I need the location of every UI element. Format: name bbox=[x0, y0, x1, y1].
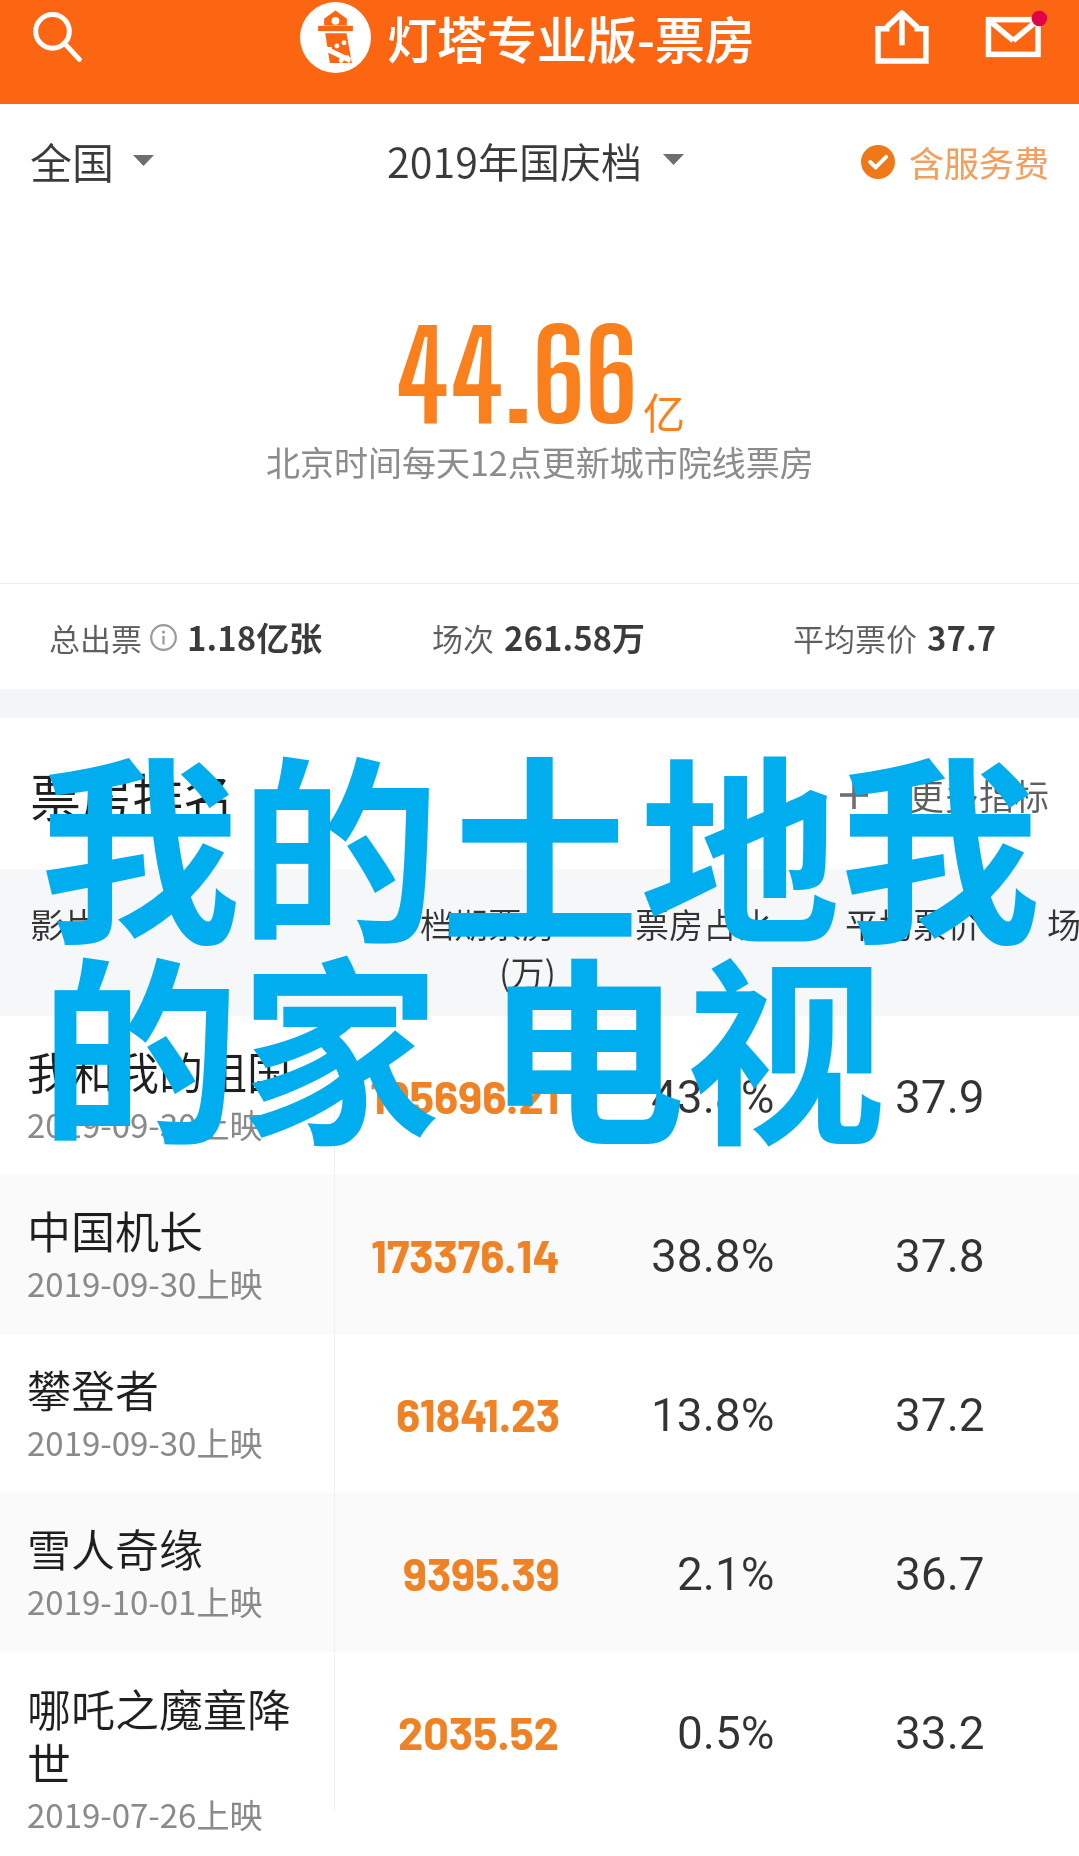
staticText: 1.18亿张 bbox=[187, 613, 323, 661]
staticText: 37.9 bbox=[895, 1070, 985, 1124]
staticText: 档期票房 (万) bbox=[420, 899, 556, 996]
staticText: 37.8 bbox=[895, 1229, 985, 1283]
staticText: 总出票 bbox=[49, 615, 142, 660]
button[interactable]: 我和我的祖国 bbox=[0, 1016, 1079, 1175]
staticText: 261.58万 bbox=[504, 613, 646, 661]
button[interactable]: 更多指标 bbox=[840, 769, 1050, 820]
staticText: 全国 bbox=[30, 130, 115, 191]
staticText: 含服务费 bbox=[909, 136, 1050, 187]
staticText: 灯塔专业版-票房 bbox=[387, 1, 755, 73]
staticText: 36.7 bbox=[895, 1547, 985, 1601]
staticText: 平均票价 bbox=[845, 899, 981, 948]
button[interactable]: Search bbox=[20, 0, 94, 74]
staticText: 影片 bbox=[30, 899, 98, 948]
button[interactable]: 含服务费 bbox=[861, 136, 1050, 187]
staticText: 哪吒之魔童降世 bbox=[27, 1676, 319, 1794]
staticText: 我的土地我 的家 电视 bbox=[40, 695, 1041, 1186]
staticText: 0.5% bbox=[677, 1706, 775, 1760]
button[interactable]: 雪人奇缘 bbox=[0, 1493, 1079, 1652]
staticText: 43.8% bbox=[651, 1070, 775, 1124]
staticText: 2019-10-01上映 bbox=[27, 1577, 263, 1625]
staticText: 61841.23 bbox=[396, 1387, 560, 1441]
staticText: 2019-09-30上映 bbox=[27, 1259, 263, 1307]
staticText: 2035.52 bbox=[398, 1705, 560, 1759]
staticText: 雪人奇缘 bbox=[27, 1516, 203, 1580]
staticText: 场次 bbox=[432, 615, 494, 660]
staticText: 票房排名 bbox=[30, 758, 235, 832]
staticText: 38.8% bbox=[651, 1229, 775, 1283]
staticText: 我和我的祖国 bbox=[27, 1039, 291, 1103]
button[interactable]: Messages bbox=[977, 0, 1057, 74]
button[interactable]: Share bbox=[865, 0, 939, 74]
staticText: 33.2 bbox=[895, 1706, 985, 1760]
staticText: 9395.39 bbox=[403, 1546, 560, 1600]
button[interactable]: 哪吒之魔童降世 bbox=[0, 1652, 1079, 1811]
staticText: 场 bbox=[1047, 899, 1079, 948]
staticText: 票房占比 bbox=[635, 899, 771, 948]
staticText: 37.7 bbox=[927, 613, 997, 661]
staticText: 中国机长 bbox=[27, 1198, 203, 1262]
button[interactable]: 2019年国庆档 bbox=[387, 130, 684, 189]
staticText: 攀登者 bbox=[27, 1357, 159, 1421]
button[interactable]: 攀登者 bbox=[0, 1334, 1079, 1493]
staticText: 亿 bbox=[643, 380, 686, 441]
staticText: 平均票价 bbox=[793, 615, 917, 660]
staticText: 44.66 bbox=[395, 302, 638, 449]
staticText: 更多指标 bbox=[909, 769, 1050, 820]
staticText: 2019-09-30上映 bbox=[27, 1418, 263, 1466]
staticText: 北京时间每天12点更新城市院线票房 bbox=[266, 437, 814, 486]
staticText: 2019-09-30上映 bbox=[27, 1100, 263, 1148]
button[interactable]: 中国机长 bbox=[0, 1175, 1079, 1334]
staticText: 2019-07-26上映 bbox=[27, 1790, 263, 1838]
staticText: 195696.21 bbox=[370, 1069, 560, 1123]
staticText: 2019年国庆档 bbox=[387, 130, 643, 189]
staticText: 2.1% bbox=[677, 1547, 775, 1601]
staticText: 37.2 bbox=[895, 1388, 985, 1442]
staticText: 173376.14 bbox=[371, 1228, 560, 1282]
button[interactable]: 全国 bbox=[30, 130, 154, 191]
staticText: 13.8% bbox=[651, 1388, 775, 1442]
